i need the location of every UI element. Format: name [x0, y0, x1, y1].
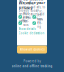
- staticText: Show details: [18, 27, 35, 31]
- staticText: We value your privacy: [18, 0, 45, 10]
- button[interactable]: Statistics: [18, 20, 31, 26]
- staticText: online and offline tracking: [11, 64, 52, 68]
- button[interactable]: Necessary: [18, 14, 31, 20]
- staticText: Powered by: [23, 59, 40, 63]
- staticText: Cookie declaration: [18, 31, 44, 35]
- staticText: Necessary: [23, 12, 29, 22]
- staticText: We use cookies to personalise content an…: [18, 0, 45, 23]
- button[interactable]: Marketing: [32, 20, 45, 26]
- button[interactable]: Preferences: [32, 14, 45, 20]
- staticText: Statistics: [23, 20, 29, 27]
- button[interactable]: Show details: [18, 27, 35, 31]
- button[interactable]: Cookie declaration: [18, 31, 44, 35]
- staticText: Allow all cookies: [19, 48, 44, 51]
- staticText: Preferences: [37, 10, 43, 24]
- staticText: Marketing: [37, 18, 43, 28]
- button[interactable]: Allow all cookies: [17, 45, 47, 53]
